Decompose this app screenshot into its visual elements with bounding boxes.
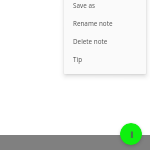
button[interactable]: Tip	[64, 50, 146, 68]
button[interactable]: New note	[120, 123, 142, 145]
staticText: Tip	[73, 55, 82, 64]
staticText: Delete note	[73, 37, 108, 46]
button[interactable]: Delete note	[64, 32, 146, 50]
button[interactable]: Rename note	[64, 14, 146, 32]
staticText: Rename note	[73, 19, 113, 28]
staticText: Save as	[73, 1, 95, 10]
button[interactable]: Save as	[64, 0, 146, 14]
